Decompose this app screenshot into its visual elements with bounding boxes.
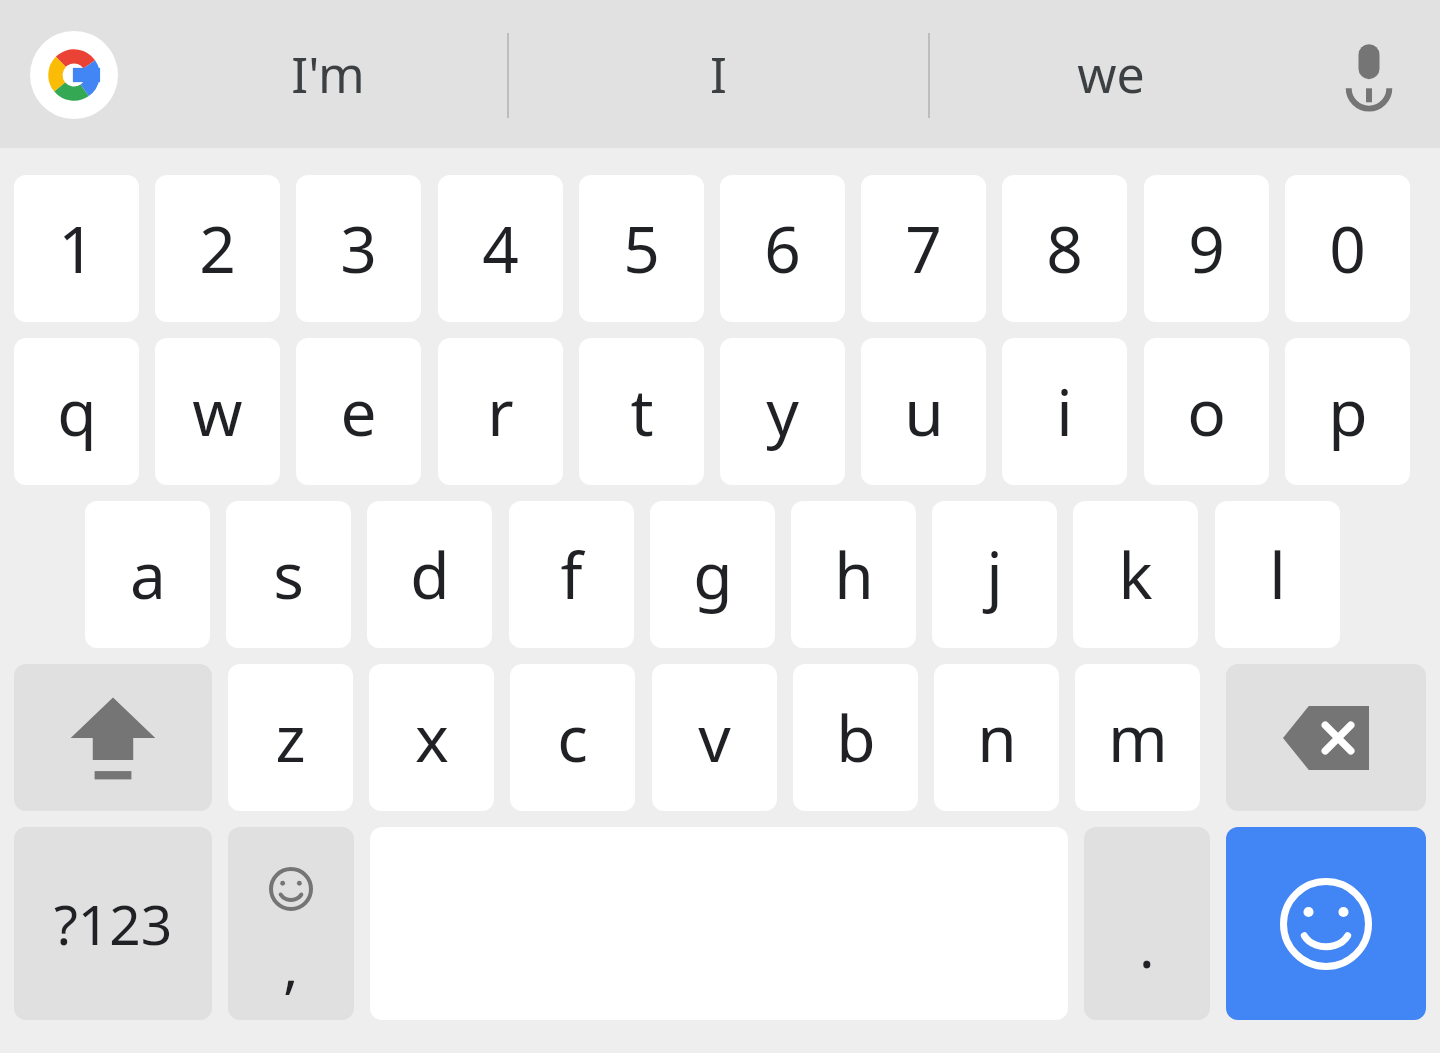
staticText: g	[693, 531, 733, 618]
staticText: ,	[283, 925, 299, 1004]
button[interactable]: ?123	[14, 827, 212, 1020]
staticText: h	[834, 531, 874, 618]
button[interactable]: y	[720, 338, 845, 485]
button[interactable]: z	[228, 664, 353, 811]
staticText: v	[698, 694, 731, 781]
button[interactable]: l	[1215, 501, 1340, 648]
button[interactable]: p	[1285, 338, 1410, 485]
button[interactable]: 4	[438, 175, 563, 322]
button[interactable]: we	[915, 0, 1306, 148]
button[interactable]: 0	[1285, 175, 1410, 322]
button[interactable]: c	[510, 664, 635, 811]
staticText: m	[1108, 694, 1168, 781]
button[interactable]: Shift	[14, 664, 212, 811]
button[interactable]: n	[934, 664, 1059, 811]
staticText: x	[415, 694, 449, 781]
staticText: 9	[1188, 205, 1225, 292]
button[interactable]: o	[1144, 338, 1269, 485]
staticText: k	[1118, 531, 1153, 618]
button[interactable]: w	[155, 338, 280, 485]
staticText: t	[630, 368, 654, 455]
button[interactable]: q	[14, 338, 139, 485]
button[interactable]: Backspace	[1226, 664, 1426, 811]
button[interactable]: d	[367, 501, 492, 648]
staticText: 3	[340, 205, 377, 292]
staticText: we	[1077, 40, 1145, 108]
staticText: w	[192, 368, 243, 455]
staticText: b	[836, 694, 876, 781]
staticText: I'm	[291, 40, 365, 108]
staticText: d	[410, 531, 450, 618]
button[interactable]: Voice input	[1318, 24, 1420, 126]
staticText: 6	[764, 205, 801, 292]
staticText: z	[275, 694, 306, 781]
staticText: j	[986, 531, 1003, 618]
button[interactable]: x	[369, 664, 494, 811]
staticText: 0	[1329, 205, 1366, 292]
button[interactable]: j	[932, 501, 1057, 648]
staticText: 1	[58, 205, 95, 292]
staticText: I	[710, 40, 727, 108]
staticText: i	[1056, 368, 1073, 455]
staticText: ?123	[54, 886, 173, 961]
staticText: a	[130, 531, 166, 618]
button[interactable]: I	[523, 0, 914, 148]
button[interactable]: u	[861, 338, 986, 485]
button[interactable]: h	[791, 501, 916, 648]
button[interactable]: v	[652, 664, 777, 811]
button[interactable]: f	[509, 501, 634, 648]
staticText: 5	[623, 205, 660, 292]
button[interactable]: a	[85, 501, 210, 648]
staticText: l	[1269, 531, 1286, 618]
button[interactable]: t	[579, 338, 704, 485]
staticText: c	[557, 694, 588, 781]
staticText: r	[487, 368, 514, 455]
button[interactable]: e	[296, 338, 421, 485]
button[interactable]: r	[438, 338, 563, 485]
staticText: 2	[199, 205, 236, 292]
button[interactable]: Comma, emoji	[228, 827, 354, 1020]
button[interactable]: 8	[1002, 175, 1127, 322]
staticText: p	[1328, 368, 1368, 455]
button[interactable]: .	[1084, 827, 1210, 1020]
button[interactable]: 2	[155, 175, 280, 322]
button[interactable]: 9	[1144, 175, 1269, 322]
button[interactable]: m	[1075, 664, 1200, 811]
button[interactable]: 3	[296, 175, 421, 322]
button[interactable]: Emoji	[1226, 827, 1426, 1020]
button[interactable]: k	[1073, 501, 1198, 648]
staticText: o	[1187, 368, 1226, 455]
button[interactable]: b	[793, 664, 918, 811]
button[interactable]: 7	[861, 175, 986, 322]
button[interactable]: Google	[30, 31, 118, 119]
staticText: e	[340, 368, 377, 455]
staticText: f	[560, 531, 583, 618]
button[interactable]: 6	[720, 175, 845, 322]
button[interactable]: I'm	[132, 0, 523, 148]
button[interactable]: 1	[14, 175, 139, 322]
staticText: y	[766, 368, 799, 455]
button[interactable]: i	[1002, 338, 1127, 485]
staticText: 4	[482, 205, 519, 292]
button[interactable]: g	[650, 501, 775, 648]
staticText: s	[273, 531, 304, 618]
button[interactable]: s	[226, 501, 351, 648]
staticText: 8	[1046, 205, 1083, 292]
staticText: .	[1139, 906, 1155, 985]
staticText: 7	[905, 205, 942, 292]
button[interactable]: 5	[579, 175, 704, 322]
staticText: q	[57, 368, 97, 455]
staticText: n	[977, 694, 1017, 781]
staticText: u	[904, 368, 944, 455]
